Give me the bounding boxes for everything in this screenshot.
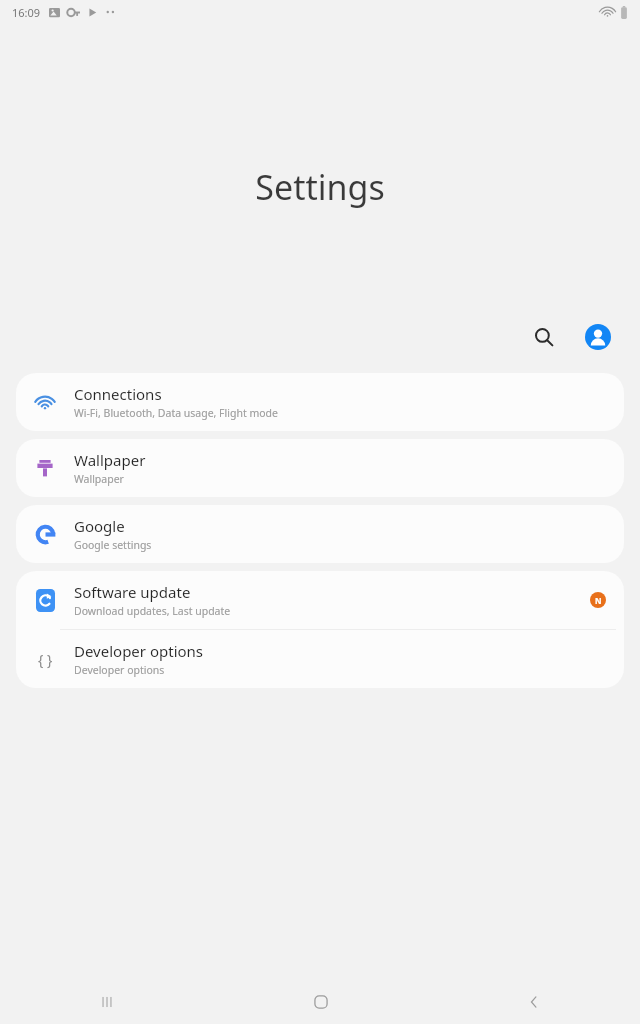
staticText: Connections	[74, 384, 162, 404]
staticText: N	[595, 595, 602, 606]
staticText: Wallpaper	[74, 472, 124, 486]
staticText: { }	[38, 650, 53, 669]
button[interactable]: Software update	[16, 571, 624, 629]
button[interactable]: { }	[16, 630, 624, 688]
button[interactable]: Account	[576, 315, 620, 359]
staticText: 16:09	[12, 5, 41, 20]
button[interactable]: Back	[427, 980, 640, 1024]
button[interactable]: Search	[522, 315, 566, 359]
staticText: Software update	[74, 582, 191, 602]
staticText: Settings	[255, 164, 385, 210]
staticText: Wallpaper	[74, 450, 146, 470]
button[interactable]: Google	[16, 505, 624, 563]
button[interactable]: Recents	[0, 980, 214, 1024]
staticText: Wi-Fi, Bluetooth, Data usage, Flight mod…	[74, 406, 279, 420]
button[interactable]: Wallpaper	[16, 439, 624, 497]
staticText: Google settings	[74, 538, 152, 552]
staticText: Developer options	[74, 663, 165, 677]
button[interactable]: Home	[214, 980, 427, 1024]
staticText: Developer options	[74, 641, 204, 661]
staticText: Download updates, Last update	[74, 604, 231, 618]
staticText: Google	[74, 516, 125, 536]
button[interactable]: Connections	[16, 373, 624, 431]
